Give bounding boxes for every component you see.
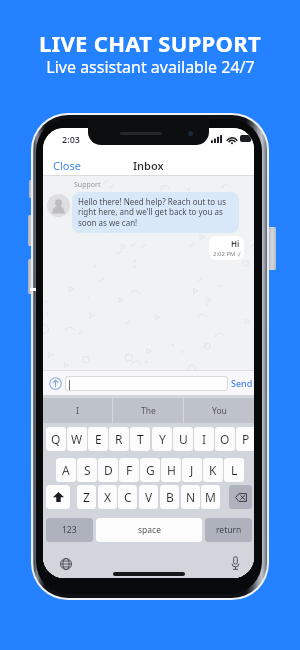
staticText: S — [84, 462, 91, 478]
staticText: E — [95, 431, 102, 447]
staticText: Y — [159, 431, 166, 447]
staticText: space — [138, 524, 161, 536]
button[interactable]: Dictate — [228, 554, 242, 572]
button[interactable]: S — [77, 458, 97, 482]
staticText: R — [115, 431, 123, 447]
staticText: O — [220, 431, 230, 447]
staticText: T — [137, 431, 144, 447]
staticText: 2:03 — [62, 133, 80, 145]
button[interactable]: W — [67, 427, 87, 451]
button[interactable]: X — [98, 485, 117, 509]
staticText: L — [231, 462, 238, 478]
button[interactable]: F — [119, 458, 139, 482]
staticText: return — [216, 524, 242, 536]
staticText: Inbox — [133, 158, 164, 173]
staticText: C — [124, 489, 132, 505]
button[interactable]: I — [43, 398, 112, 423]
staticText: 2:02 PM — [213, 250, 236, 258]
button[interactable]: U — [173, 427, 193, 451]
button[interactable]: Y — [152, 427, 172, 451]
staticText: Hi — [231, 238, 240, 249]
button[interactable]: Hi — [209, 236, 244, 260]
staticText: Live assistant available 24/7 — [46, 56, 255, 78]
button[interactable]: 123 — [46, 518, 93, 542]
button[interactable]: Backspace — [229, 485, 252, 509]
button[interactable] — [66, 377, 227, 390]
staticText: M — [205, 489, 216, 505]
button[interactable]: The — [113, 398, 183, 423]
button[interactable]: O — [215, 427, 235, 451]
staticText: I — [76, 405, 79, 417]
staticText: F — [126, 462, 133, 478]
button[interactable]: K — [203, 458, 223, 482]
button[interactable]: You — [184, 398, 254, 423]
staticText: B — [166, 489, 174, 505]
staticText: A — [62, 462, 70, 478]
button[interactable]: Close — [47, 154, 87, 177]
button[interactable]: C — [118, 485, 137, 509]
staticText: Support — [74, 180, 101, 190]
staticText: I — [202, 431, 207, 447]
staticText: K — [209, 462, 217, 478]
button[interactable]: G — [140, 458, 160, 482]
button[interactable]: J — [182, 458, 202, 482]
button[interactable]: Z — [77, 485, 96, 509]
button[interactable]: L — [224, 458, 244, 482]
button[interactable]: space — [96, 518, 202, 542]
staticText: W — [71, 431, 83, 447]
button[interactable]: H — [161, 458, 181, 482]
staticText: U — [179, 431, 188, 447]
staticText: D — [104, 462, 113, 478]
button[interactable]: Q — [46, 427, 66, 451]
staticText: X — [104, 489, 112, 505]
staticText: G — [146, 462, 155, 478]
button[interactable]: E — [88, 427, 108, 451]
button[interactable]: return — [205, 518, 252, 542]
button[interactable]: Send — [231, 377, 253, 389]
staticText: Q — [51, 431, 61, 447]
button[interactable]: D — [98, 458, 118, 482]
button[interactable]: Change keyboard — [57, 555, 75, 573]
button[interactable]: I — [194, 427, 214, 451]
staticText: N — [186, 489, 196, 505]
staticText: The — [141, 405, 156, 417]
button[interactable]: N — [181, 485, 200, 509]
button[interactable]: A — [56, 458, 76, 482]
staticText: 123 — [62, 524, 77, 536]
button[interactable]: Shift — [46, 485, 70, 509]
button[interactable]: B — [160, 485, 179, 509]
staticText: P — [242, 431, 250, 447]
staticText: Z — [83, 489, 90, 505]
button[interactable]: Hello there! Need help? Reach out to us … — [72, 192, 239, 233]
button[interactable]: V — [139, 485, 158, 509]
staticText: V — [145, 489, 153, 505]
button[interactable]: P — [236, 427, 254, 451]
button[interactable]: M — [201, 485, 220, 509]
staticText: You — [212, 405, 227, 417]
button[interactable]: R — [109, 427, 129, 451]
staticText: Hello there! Need help? Reach out to us … — [78, 196, 234, 229]
staticText: J — [190, 462, 194, 478]
staticText: H — [167, 462, 176, 478]
button[interactable]: T — [130, 427, 150, 451]
button[interactable]: Attach — [48, 376, 63, 391]
staticText: LIVE CHAT SUPPORT — [39, 28, 261, 58]
